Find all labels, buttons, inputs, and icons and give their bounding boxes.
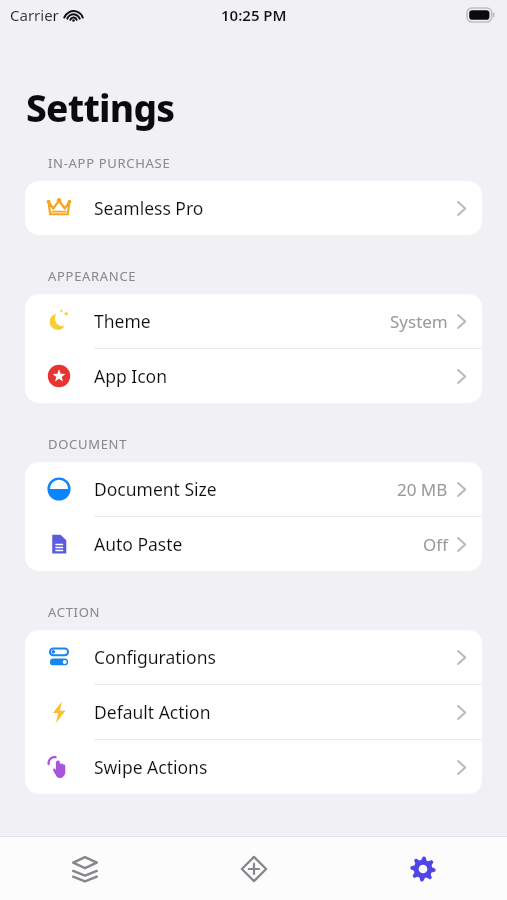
button[interactable]: Add bbox=[169, 837, 338, 900]
staticText: Settings bbox=[26, 82, 175, 132]
button[interactable]: Configurations bbox=[25, 630, 482, 685]
staticText: Default Action bbox=[94, 700, 211, 724]
staticText: APPEARANCE bbox=[48, 267, 137, 285]
staticText: 10:25 PM bbox=[221, 5, 287, 25]
staticText: Seamless Pro bbox=[94, 196, 204, 220]
staticText: Theme bbox=[94, 309, 151, 333]
staticText: Carrier bbox=[10, 5, 59, 25]
staticText: Document Size bbox=[94, 477, 217, 501]
staticText: Configurations bbox=[94, 645, 216, 669]
button[interactable]: Seamless Pro bbox=[25, 181, 482, 235]
button[interactable]: App Icon bbox=[25, 349, 482, 403]
staticText: DOCUMENT bbox=[48, 435, 128, 453]
staticText: Off bbox=[423, 533, 448, 556]
button[interactable]: Layers bbox=[0, 837, 169, 900]
button[interactable]: Auto Paste bbox=[25, 517, 482, 571]
staticText: 20 MB bbox=[397, 478, 448, 501]
button[interactable]: Settings bbox=[338, 837, 507, 900]
button[interactable]: Swipe Actions bbox=[25, 740, 482, 794]
staticText: ACTION bbox=[48, 603, 101, 621]
staticText: App Icon bbox=[94, 364, 167, 388]
staticText: Auto Paste bbox=[94, 532, 183, 556]
staticText: IN-APP PURCHASE bbox=[48, 154, 171, 172]
button[interactable]: Default Action bbox=[25, 685, 482, 740]
staticText: Swipe Actions bbox=[94, 755, 208, 779]
button[interactable]: Document Size bbox=[25, 462, 482, 517]
button[interactable]: Theme bbox=[25, 294, 482, 349]
staticText: System bbox=[390, 310, 448, 333]
